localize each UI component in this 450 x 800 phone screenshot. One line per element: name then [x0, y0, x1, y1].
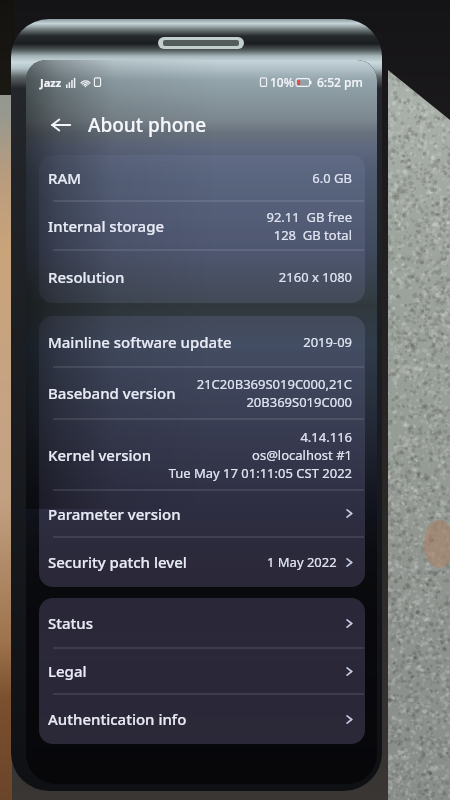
staticText: Parameter version	[48, 504, 181, 524]
button[interactable]: Back	[46, 110, 76, 140]
staticText: Legal	[48, 661, 87, 681]
button[interactable]: Status	[26, 598, 377, 648]
button[interactable]: Legal	[26, 648, 377, 694]
staticText: Status	[48, 613, 94, 633]
staticText: 10%	[270, 74, 294, 90]
button[interactable]: Resolution	[26, 250, 377, 303]
staticText: Authentication info	[48, 709, 187, 729]
staticText: 2160 x 1080	[278, 268, 352, 286]
button[interactable]: Security patch level	[26, 537, 377, 587]
staticText: 21C20B369S019C000,21C	[196, 375, 352, 393]
button[interactable]: Parameter version	[26, 490, 377, 537]
staticText: Security patch level	[48, 552, 187, 572]
button[interactable]: Kernel version	[26, 419, 377, 490]
staticText: Kernel version	[48, 445, 152, 465]
button[interactable]: Internal storage	[26, 201, 377, 250]
staticText: Baseband version	[48, 383, 176, 403]
staticText: Internal storage	[48, 216, 165, 236]
button[interactable]: Mainline software update	[26, 316, 377, 367]
staticText: 2019-09	[303, 333, 352, 351]
staticText: Mainline software update	[48, 332, 232, 352]
button[interactable]: Baseband version	[26, 367, 377, 419]
staticText: RAM	[48, 168, 82, 188]
staticText: 20B369S019C000	[246, 393, 352, 411]
staticText: os@localhost #1	[252, 446, 352, 464]
staticText: Resolution	[48, 267, 125, 287]
staticText: 1 May 2022	[267, 553, 337, 571]
staticText: Jazz	[40, 75, 62, 90]
staticText: 6.0 GB	[312, 169, 352, 187]
button[interactable]: RAM	[26, 155, 377, 201]
button[interactable]: Authentication info	[26, 694, 377, 744]
staticText: 92.11 GB free	[266, 208, 352, 226]
staticText: About phone	[88, 112, 207, 138]
staticText: 128 GB total	[273, 226, 352, 244]
staticText: 6:52 pm	[317, 74, 363, 90]
staticText: Tue May 17 01:11:05 CST 2022	[168, 464, 352, 482]
staticText: 4.14.116	[300, 428, 352, 446]
